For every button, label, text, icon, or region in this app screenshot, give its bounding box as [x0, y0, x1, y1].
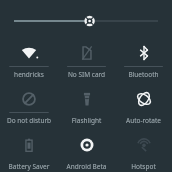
staticText: hendricks	[0, 70, 58, 79]
button[interactable]: Android Beta	[58, 132, 115, 172]
staticText: Hotspot	[115, 162, 172, 171]
staticText: No SIM card	[58, 70, 115, 79]
button[interactable]: Bluetooth	[115, 40, 172, 82]
staticText: Bluetooth	[115, 70, 172, 79]
staticText: Battery Saver	[0, 162, 58, 171]
button[interactable]: No SIM card	[58, 40, 115, 82]
staticText: Auto-rotate	[115, 116, 172, 125]
button[interactable]: Auto-rotate	[115, 86, 172, 128]
button[interactable]: Brightness	[0, 12, 172, 30]
staticText: Do not disturb	[0, 116, 58, 125]
button[interactable]: Hotspot	[115, 132, 172, 172]
staticText: Android Beta	[58, 162, 115, 171]
button[interactable]: Do not disturb	[0, 86, 58, 128]
button[interactable]: hendricks	[0, 40, 58, 82]
button[interactable]: Flashlight	[58, 86, 115, 128]
button[interactable]: Battery Saver	[0, 132, 58, 172]
staticText: Flashlight	[58, 116, 115, 125]
